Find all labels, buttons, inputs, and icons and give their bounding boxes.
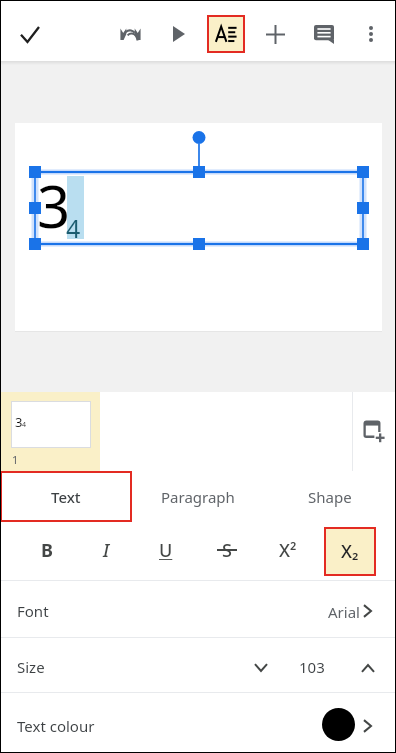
staticText: 4 [22,420,27,430]
button[interactable]: X₂ [324,527,376,576]
staticText: 4 [66,211,81,245]
button[interactable]: New slide [353,392,396,471]
button[interactable]: U [142,526,190,574]
staticText: Arial [328,602,360,622]
button[interactable]: Font [0,581,396,637]
staticText: B [41,538,53,563]
button[interactable]: I [82,526,130,574]
button[interactable]: Comments [309,19,339,49]
button[interactable]: Text colour [0,693,396,752]
staticText: 1 [12,452,19,467]
staticText: Font [17,601,49,621]
staticText: S [222,538,232,563]
button[interactable]: Present [164,19,194,49]
staticText: 103 [299,657,325,677]
staticText: X₂ [341,539,359,564]
button[interactable]: Format [207,15,245,53]
button[interactable]: Undo [115,19,145,49]
button[interactable]: Decrease size [245,651,277,683]
button[interactable]: Done [13,17,47,51]
button[interactable]: Paragraph [132,471,264,522]
button[interactable]: 3 [0,392,100,471]
button[interactable]: B [23,526,71,574]
staticText: 3 [15,413,23,431]
button[interactable]: More options [356,19,386,49]
staticText: Paragraph [161,487,235,507]
staticText: Text colour [17,716,95,736]
button[interactable]: S [203,526,251,574]
button[interactable]: Increase size [352,652,384,684]
staticText: X² [279,538,297,563]
staticText: U [159,538,173,563]
button[interactable]: Insert [260,19,290,49]
staticText: Text [51,487,81,507]
button[interactable]: X² [264,526,312,574]
button[interactable]: Shape [264,471,396,522]
staticText: Size [17,657,45,677]
staticText: Shape [308,487,352,507]
staticText: 3 [37,166,71,245]
button[interactable]: Text [0,471,132,522]
staticText: I [103,538,110,563]
